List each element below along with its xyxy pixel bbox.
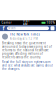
button[interactable]: Messenger (50, 26, 54, 30)
button[interactable]: Facebook (1, 26, 5, 31)
staticText: Search (8, 26, 16, 30)
staticText: The New York Times (9, 33, 39, 36)
staticText: Read the full story on nytimes.com and s… (2, 60, 53, 71)
staticText: Yesterday at 5:12 PM (9, 37, 37, 40)
staticText: 9:41 AM (23, 19, 30, 26)
staticText: Carrier (1, 21, 11, 24)
button[interactable]: Search (7, 26, 49, 30)
staticText: f (2, 25, 4, 32)
staticText: 100% (46, 21, 54, 24)
staticText: Breaking news: the government announced … (2, 41, 52, 59)
